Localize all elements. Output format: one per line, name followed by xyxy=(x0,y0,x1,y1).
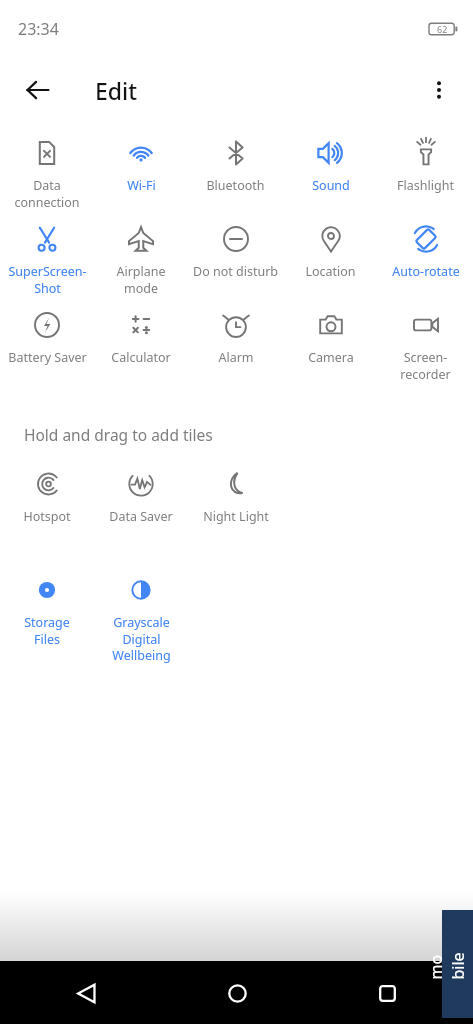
staticText: 62 xyxy=(437,23,448,35)
staticText: Battery Saver xyxy=(8,349,87,366)
button[interactable]: Back xyxy=(62,969,110,1017)
button[interactable]: Sound xyxy=(283,138,378,194)
button[interactable]: Wi-Fi xyxy=(94,138,188,194)
staticText: Hotspot xyxy=(23,508,71,525)
button[interactable]: Camera xyxy=(283,310,378,366)
staticText: Storage Files xyxy=(24,614,70,647)
button[interactable]: Location xyxy=(283,224,378,280)
button[interactable]: Grayscale Digital Wellbeing xyxy=(94,575,188,663)
staticText: SuperScreen- Shot xyxy=(8,263,87,296)
staticText: Do not disturb xyxy=(193,263,278,280)
staticText: Location xyxy=(305,263,356,280)
button[interactable]: Data connection xyxy=(0,138,94,210)
staticText: Sound xyxy=(312,177,350,194)
button[interactable]: Storage Files xyxy=(0,575,94,647)
staticText: Camera xyxy=(308,349,354,366)
staticText: Auto-rotate xyxy=(392,263,460,280)
staticText: Airplane mode xyxy=(116,263,166,296)
staticText: Data Saver xyxy=(109,508,173,525)
button[interactable]: Hotspot xyxy=(0,469,94,525)
button[interactable]: Calculator xyxy=(94,310,188,366)
button[interactable]: SuperScreen- Shot xyxy=(0,224,94,296)
staticText: Alarm xyxy=(218,349,254,366)
button[interactable]: Home xyxy=(213,969,261,1017)
staticText: 23:34 xyxy=(18,18,59,40)
button[interactable]: Airplane mode xyxy=(94,224,188,296)
button[interactable]: Bluetooth xyxy=(188,138,283,194)
button[interactable]: Data Saver xyxy=(94,469,188,525)
staticText: Data connection xyxy=(14,177,80,210)
button[interactable]: More options xyxy=(417,68,461,112)
staticText: mobile.ir xyxy=(424,948,473,979)
staticText: Hold and drag to add tiles xyxy=(24,424,213,445)
staticText: Flashlight xyxy=(397,177,454,194)
staticText: Bluetooth xyxy=(206,177,265,194)
staticText: Wi-Fi xyxy=(127,177,156,194)
staticText: Screen- recorder xyxy=(400,349,451,382)
staticText: Grayscale Digital Wellbeing xyxy=(112,614,171,663)
button[interactable]: Flashlight xyxy=(378,138,473,194)
button[interactable]: Recent apps xyxy=(363,969,411,1017)
staticText: Night Light xyxy=(203,508,269,525)
button[interactable]: Screen- recorder xyxy=(378,310,473,382)
button[interactable]: Auto-rotate xyxy=(378,224,473,280)
button[interactable]: Battery Saver xyxy=(0,310,94,366)
button[interactable]: Back xyxy=(16,68,60,112)
button[interactable]: Alarm xyxy=(188,310,283,366)
button[interactable]: Do not disturb xyxy=(188,224,283,280)
staticText: Edit xyxy=(95,75,138,106)
staticText: Calculator xyxy=(111,349,171,366)
button[interactable]: Night Light xyxy=(188,469,283,525)
